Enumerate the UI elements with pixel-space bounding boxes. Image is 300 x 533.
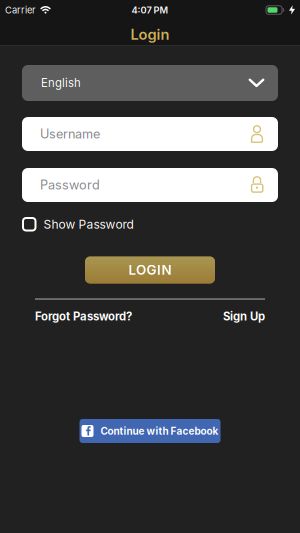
button[interactable]: Username bbox=[22, 117, 278, 151]
staticText: 4:07 PM bbox=[131, 4, 168, 16]
button[interactable]: Password bbox=[22, 168, 278, 202]
staticText: Password bbox=[40, 177, 100, 193]
button[interactable]: English bbox=[22, 65, 278, 101]
button[interactable]: Continue with Facebook bbox=[79, 419, 220, 443]
staticText: Show Password bbox=[43, 217, 133, 231]
button[interactable]: Forgot Password? bbox=[35, 309, 132, 323]
staticText: Forgot Password? bbox=[35, 309, 132, 323]
staticText: Sign Up bbox=[223, 309, 265, 323]
staticText: Username bbox=[40, 126, 100, 142]
staticText: Continue with Facebook bbox=[100, 425, 218, 437]
button[interactable]: Sign Up bbox=[223, 309, 265, 323]
staticText: English bbox=[41, 76, 81, 90]
staticText: LOGIN bbox=[128, 262, 171, 278]
staticText: Carrier bbox=[5, 4, 36, 16]
button[interactable]: Show Password bbox=[22, 217, 36, 231]
button[interactable]: LOGIN bbox=[85, 256, 215, 283]
staticText: Login bbox=[130, 26, 169, 43]
